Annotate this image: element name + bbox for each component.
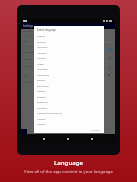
other: Share	[108, 57, 111, 60]
staticText: Notifications	[23, 35, 36, 38]
button[interactable]: Arabic	[34, 60, 104, 66]
staticText: Select sound	[23, 40, 36, 43]
staticText: Armenian	[37, 67, 48, 70]
staticText: Burmese	[37, 106, 47, 109]
staticText: Data usage	[23, 51, 36, 54]
button[interactable]: Armenian	[34, 65, 104, 71]
staticText: Vibrate	[23, 58, 31, 61]
staticText: Afrikaans	[37, 45, 48, 48]
button[interactable]: Data usage	[21, 50, 34, 55]
button[interactable]: Select sound	[21, 39, 34, 44]
other: Edit	[108, 66, 111, 69]
staticText: Arabic	[37, 62, 44, 65]
staticText: Select language	[37, 28, 56, 31]
staticText: CANCEL	[91, 128, 101, 131]
staticText: Catalan	[37, 117, 46, 120]
staticText: Chinese	[37, 122, 46, 125]
staticText: Language	[54, 158, 83, 166]
staticText: View all of the app content in your lang…	[24, 168, 113, 174]
button[interactable]: Burmese	[34, 104, 104, 110]
button[interactable]: Bengali	[34, 87, 104, 93]
button[interactable]: Spanish	[34, 38, 104, 44]
button[interactable]: Ringtone	[21, 44, 34, 49]
staticText: English	[37, 34, 45, 37]
button[interactable]: Amharic	[34, 54, 104, 60]
staticText: Rating	[106, 41, 113, 44]
button[interactable]: Vibrate	[21, 57, 34, 62]
staticText: Settings	[23, 24, 33, 28]
button[interactable]: Account	[21, 29, 34, 34]
staticText: Multi Window	[23, 74, 36, 77]
button[interactable]: Multi Window	[21, 73, 34, 78]
button[interactable]: Notifications	[21, 34, 34, 39]
staticText: Ringtone	[23, 45, 33, 48]
button[interactable]: Albanian	[34, 49, 104, 55]
button[interactable]: Privacy	[21, 80, 34, 85]
button[interactable]: Chinese	[34, 120, 104, 126]
button[interactable]: Cantonese (traditional)	[34, 109, 104, 115]
staticText: Amharic	[37, 56, 47, 59]
button[interactable]: CANCEL	[91, 128, 101, 131]
staticText: Albanian	[37, 51, 47, 54]
staticText: Belarusian	[37, 84, 49, 87]
button[interactable]: Catalan	[34, 115, 104, 121]
staticText: Cantonese (traditional)	[37, 111, 63, 114]
staticText: Account	[23, 30, 32, 33]
staticText: Storage	[23, 65, 32, 68]
staticText: Bengali	[37, 89, 46, 92]
staticText: Bulgarian	[37, 100, 48, 103]
staticText: Azerbaijani	[37, 73, 50, 76]
button[interactable]: Azerbaijani	[34, 71, 104, 77]
button[interactable]: Bulgarian	[34, 98, 104, 104]
button[interactable]: Bosnian	[34, 93, 104, 99]
staticText: Privacy	[23, 81, 31, 84]
staticText: Basque	[37, 78, 46, 81]
button[interactable]: Belarusian	[34, 82, 104, 88]
button[interactable]: English	[34, 32, 104, 38]
button[interactable]: Storage	[21, 64, 34, 69]
staticText: Spanish	[37, 40, 46, 43]
button[interactable]: Afrikaans	[34, 43, 104, 49]
button[interactable]: Basque	[34, 76, 104, 82]
staticText: Bosnian	[37, 95, 46, 98]
